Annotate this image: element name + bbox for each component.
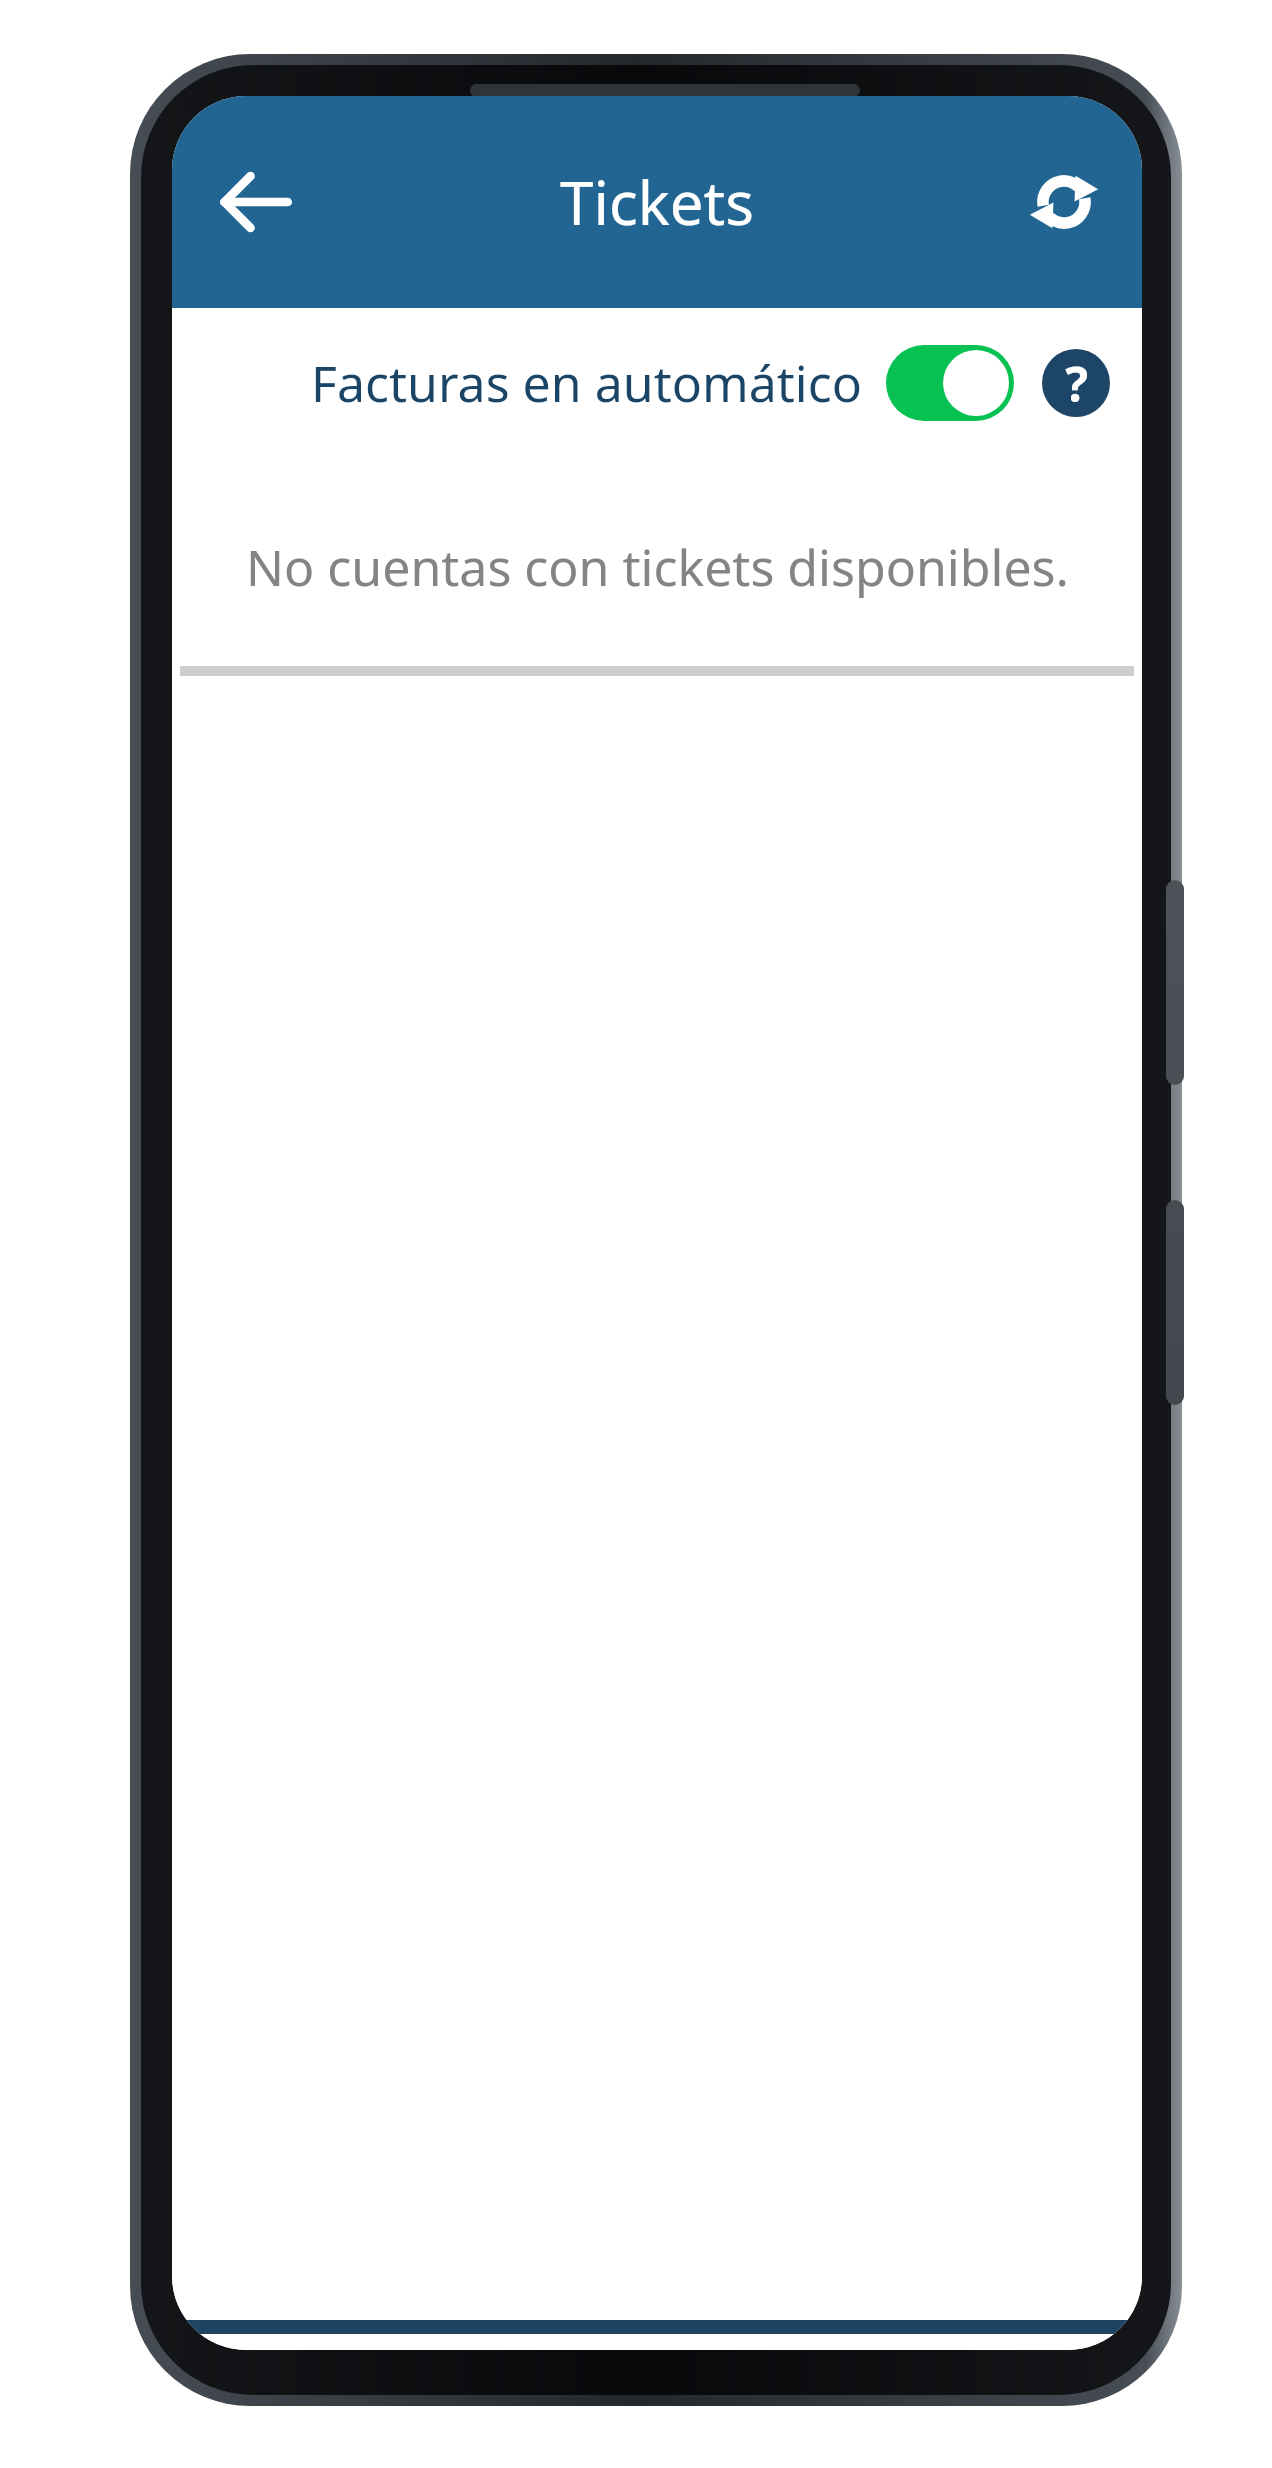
- button[interactable]: Refresh: [1004, 142, 1124, 262]
- button[interactable]: Back: [190, 137, 320, 267]
- staticText: Tickets: [560, 161, 754, 243]
- staticText: ?: [1065, 351, 1088, 416]
- staticText: No cuentas con tickets disponibles.: [246, 533, 1069, 601]
- button[interactable]: No cuentas con tickets disponibles.: [180, 458, 1134, 676]
- staticText: Facturas en automático: [311, 349, 862, 417]
- button[interactable]: Help: [1036, 343, 1116, 423]
- button[interactable]: Facturas en automático: [311, 345, 1014, 421]
